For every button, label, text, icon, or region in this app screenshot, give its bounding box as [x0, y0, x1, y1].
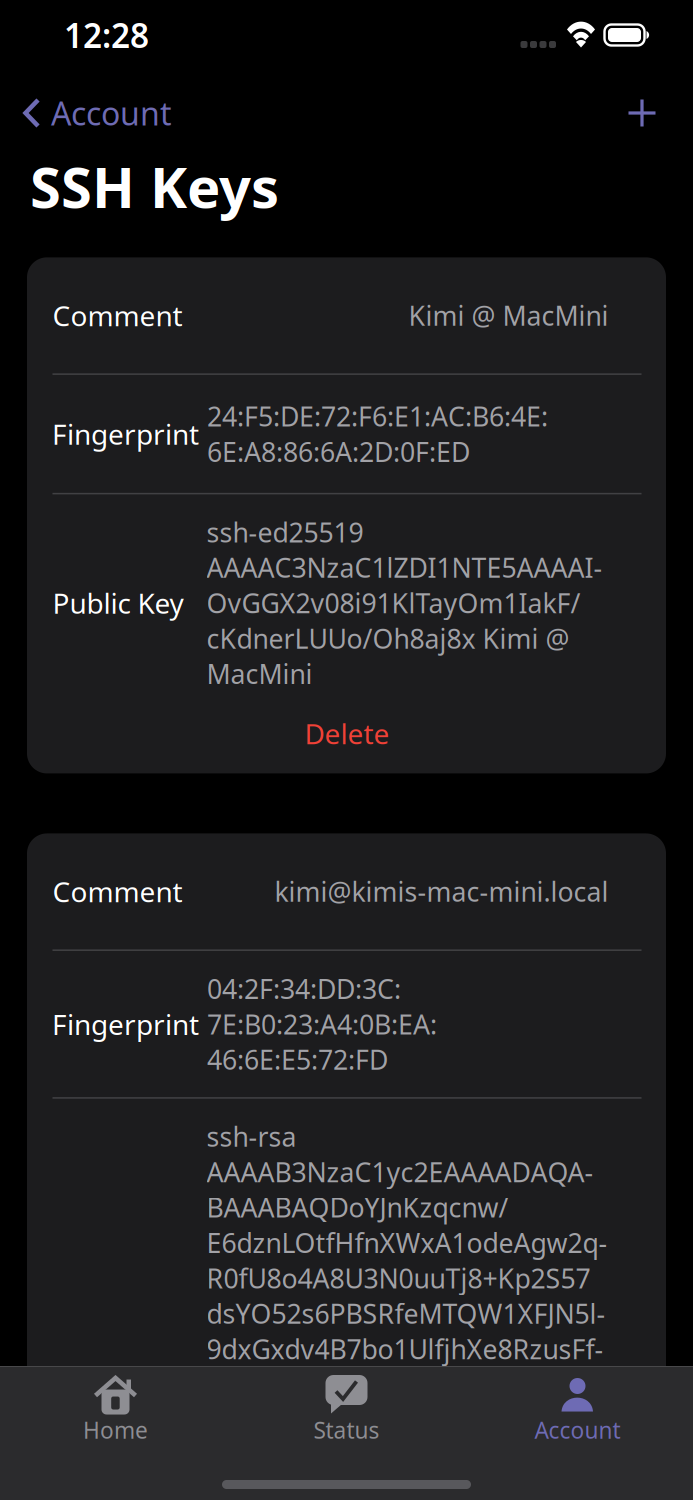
staticText: Kimi @ MacMini	[408, 298, 608, 333]
staticText: ssh-rsa AAAAB3NzaC1yc2EAAAADAQABAAABAQDo…	[206, 1119, 607, 1437]
button[interactable]: Status	[231, 1367, 462, 1447]
staticText: Home	[83, 1415, 148, 1445]
staticText: 24:F5:DE:72:F6:E1:AC:B6:4E:6E:A8:86:6A:2…	[207, 398, 548, 469]
staticText: Fingerprint	[52, 415, 199, 452]
staticText: 04:2F:34:DD:3C:7E:B0:23:A4:0B:EA:46:6E:E…	[207, 971, 437, 1077]
button[interactable]: Account	[462, 1367, 693, 1447]
staticText: Delete	[304, 715, 389, 752]
staticText: Comment	[52, 873, 182, 910]
button[interactable]: Home	[0, 1367, 231, 1447]
button[interactable]: Add SSH Key	[604, 80, 693, 146]
button[interactable]: Account	[0, 80, 188, 146]
staticText: ssh-ed25519 AAAAC3NzaC1lZDI1NTE5AAAAIOvG…	[206, 514, 602, 691]
staticText: Public Key	[52, 584, 183, 621]
staticText: kimi@kimis-mac-mini.local	[274, 874, 608, 909]
staticText: Status	[313, 1415, 379, 1445]
button[interactable]: Delete	[27, 711, 666, 755]
staticText: Account	[51, 92, 172, 134]
staticText: SSH Keys	[30, 149, 279, 223]
staticText: 12:28	[64, 13, 149, 57]
staticText: Account	[534, 1415, 620, 1445]
staticText: Fingerprint	[52, 1005, 199, 1043]
staticText: Comment	[52, 297, 182, 334]
